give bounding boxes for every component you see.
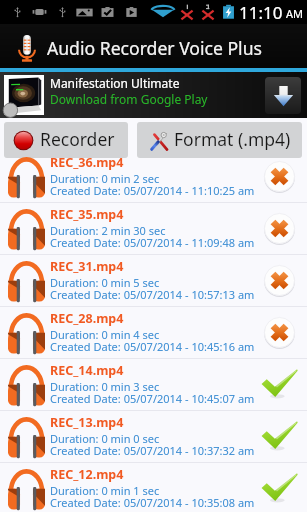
staticText: Created Date: 05/07/2014 - 10:45:07 am [50, 391, 255, 406]
staticText: 11:10 [239, 1, 283, 24]
button[interactable]: Converted [260, 472, 298, 504]
staticText: REC_13.mp4 [50, 414, 124, 431]
button[interactable]: Audio Recorder Voice Plus [0, 24, 307, 72]
button[interactable]: REC_36.mp4 [0, 151, 307, 203]
button[interactable]: Delete [260, 160, 298, 192]
staticText: Download from Google Play [50, 91, 208, 107]
button[interactable]: REC_31.mp4 [0, 255, 307, 307]
button[interactable]: REC_13.mp4 [0, 411, 307, 463]
staticText: Created Date: 05/07/2014 - 10:45:16 am [50, 339, 255, 354]
staticText: REC_14.mp4 [50, 362, 124, 379]
button[interactable]: Format (.mp4) [137, 122, 302, 158]
button[interactable]: Converted [260, 420, 298, 452]
button[interactable]: REC_14.mp4 [0, 359, 307, 411]
staticText: Created Date: 05/07/2014 - 11:10:25 am [50, 183, 255, 198]
button[interactable]: REC_35.mp4 [0, 203, 307, 255]
button[interactable]: Delete [260, 316, 298, 348]
staticText: REC_12.mp4 [50, 466, 124, 483]
button[interactable]: REC_28.mp4 [0, 307, 307, 359]
staticText: Created Date: 05/07/2014 - 10:35:08 am [50, 495, 255, 510]
staticText: Duration: 0 min 2 sec [50, 171, 160, 186]
staticText: REC_35.mp4 [50, 206, 124, 223]
button[interactable]: Recorder [4, 122, 128, 158]
staticText: Manifestation Ultimate [50, 75, 180, 91]
staticText: AM [286, 6, 304, 21]
staticText: Duration: 0 min 4 sec [50, 327, 160, 342]
staticText: REC_28.mp4 [50, 310, 124, 327]
button[interactable]: Download [265, 77, 301, 114]
staticText: Recorder [40, 127, 115, 151]
staticText: REC_36.mp4 [50, 154, 124, 171]
staticText: Duration: 0 min 3 sec [50, 379, 160, 394]
button[interactable]: REC_12.mp4 [0, 463, 307, 512]
staticText: Duration: 0 min 5 sec [50, 275, 160, 290]
staticText: Audio Recorder Voice Plus [47, 36, 262, 60]
staticText: Duration: 2 min 30 sec [50, 223, 166, 238]
staticText: Duration: 0 min 1 sec [50, 483, 160, 498]
staticText: Created Date: 05/07/2014 - 10:37:32 am [50, 443, 255, 458]
staticText: REC_31.mp4 [50, 258, 124, 275]
button[interactable]: Converted [260, 368, 298, 400]
button[interactable]: Delete [260, 264, 298, 296]
staticText: Created Date: 05/07/2014 - 10:57:13 am [50, 287, 255, 302]
button[interactable]: Delete [260, 212, 298, 244]
staticText: Duration: 0 min 0 sec [50, 431, 160, 446]
button[interactable]: Manifestation Ultimate [0, 72, 307, 118]
staticText: Created Date: 05/07/2014 - 11:09:48 am [50, 235, 255, 250]
staticText: Format (.mp4) [174, 127, 291, 151]
